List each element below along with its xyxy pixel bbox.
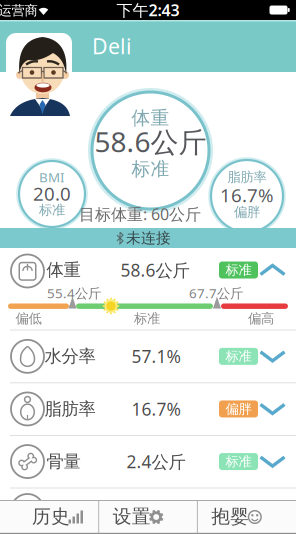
staticText: 58.6公斤 (120, 258, 189, 281)
button[interactable]: 抱婴 (197, 500, 295, 533)
staticText: 标准 (225, 348, 251, 365)
button[interactable]: 体重详情 (92, 92, 209, 209)
staticText: 标准 (131, 157, 169, 180)
button[interactable]: 脂肪率 (0, 383, 296, 435)
button[interactable]: 历史 (0, 500, 98, 533)
staticText: 水分率 (44, 346, 95, 367)
staticText: 偏低 (15, 310, 41, 327)
staticText: 67.7公斤 (189, 284, 243, 302)
staticText: 标准 (225, 262, 251, 278)
staticText: 脂肪率 (227, 169, 266, 185)
staticText: Deli (92, 32, 132, 60)
staticText: 16.7% (220, 183, 274, 207)
staticText: 下午2:43 (116, 0, 179, 21)
staticText: 标准 (225, 453, 251, 470)
staticText: 2.4公斤 (126, 450, 185, 473)
staticText: 标准 (134, 310, 160, 327)
staticText: 设置 (113, 505, 151, 528)
staticText: 16.7% (131, 397, 180, 420)
staticText: 55.4公斤 (47, 284, 101, 302)
staticText: 偏高 (248, 310, 274, 327)
staticText: 20.0 (33, 181, 71, 206)
staticText: 57.1% (131, 345, 180, 368)
button[interactable]: 个人资料 (6, 33, 72, 116)
button[interactable]: 设置 (99, 500, 197, 533)
staticText: 历史 (32, 505, 70, 528)
staticText: 抱婴 (211, 505, 249, 528)
staticText: BMI (39, 168, 65, 186)
staticText: 标准 (39, 202, 65, 218)
staticText: 偏胖 (225, 401, 251, 417)
button[interactable]: 骨量 (0, 435, 296, 488)
staticText: 体重 (46, 259, 80, 281)
staticText: 运营商 (0, 2, 37, 19)
staticText: 未连接 (126, 229, 171, 247)
staticText: 58.6公斤 (94, 123, 206, 160)
staticText: 偏胖 (234, 204, 260, 220)
staticText: 体重 (131, 106, 169, 129)
button[interactable]: 体重 (0, 248, 296, 330)
button[interactable]: 水分率 (0, 330, 296, 383)
button[interactable]: 蓝牙未连接 (0, 228, 296, 248)
staticText: 目标体重: 60公斤 (79, 203, 201, 225)
staticText: 脂肪率 (44, 398, 95, 420)
staticText: 骨量 (46, 451, 80, 472)
